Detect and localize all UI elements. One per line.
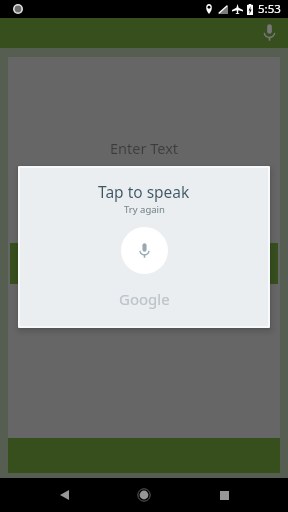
staticText: Enter Text <box>110 138 179 158</box>
staticText: Try again <box>124 203 165 216</box>
button[interactable] <box>10 243 278 284</box>
staticText: Tap to speak <box>98 181 190 202</box>
staticText: Google <box>119 289 170 309</box>
staticText: 5:53 <box>258 1 281 17</box>
button[interactable]: Recent apps <box>204 478 244 512</box>
button[interactable]: Microphone, tap to speak <box>121 227 168 274</box>
button[interactable]: Back <box>44 478 84 512</box>
button[interactable]: Voice search <box>255 18 283 46</box>
button[interactable]: Home <box>124 478 164 512</box>
